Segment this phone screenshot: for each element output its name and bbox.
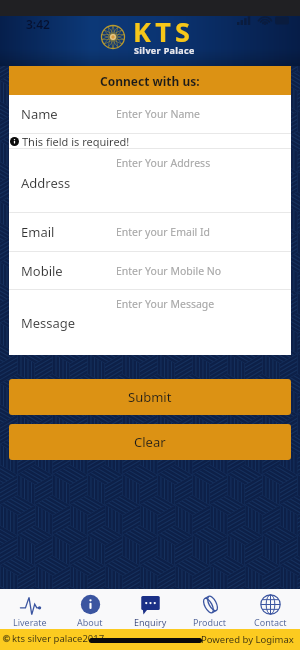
staticText: 3:42 xyxy=(26,16,50,32)
staticText: Message xyxy=(21,314,76,332)
staticText: This field is required! xyxy=(22,134,130,148)
staticText: Mobile xyxy=(21,262,63,280)
staticText: Email xyxy=(21,223,55,241)
staticText: Name xyxy=(21,105,58,123)
button[interactable]: Address xyxy=(9,149,291,212)
button[interactable]: Submit xyxy=(9,379,291,415)
staticText: kts silver palace2017 xyxy=(12,632,105,645)
staticText: Product xyxy=(193,616,227,628)
staticText: Liverate xyxy=(13,616,47,628)
staticText: Contact xyxy=(254,616,287,628)
staticText: Clear xyxy=(134,433,166,451)
staticText: KTS xyxy=(133,13,194,50)
button[interactable]: Clear xyxy=(9,424,291,460)
staticText: Connect with us: xyxy=(100,73,200,89)
button[interactable]: Connect with us: xyxy=(9,66,291,95)
button[interactable]: Contact xyxy=(240,589,300,629)
button[interactable]: Liverate xyxy=(0,589,60,629)
staticText: Enquiry xyxy=(134,616,167,628)
staticText: Enter Your Mobile No xyxy=(116,264,222,278)
staticText: Submit xyxy=(128,388,172,406)
staticText: Powered by Logimax xyxy=(201,633,294,646)
button[interactable]: Enquiry xyxy=(120,589,180,629)
staticText: Enter Your Address xyxy=(116,156,211,170)
button[interactable]: Name xyxy=(9,95,291,133)
staticText: Address xyxy=(21,174,71,192)
staticText: Enter your Email Id xyxy=(116,225,211,239)
button[interactable]: Product xyxy=(180,589,240,629)
staticText: Silver Palace xyxy=(134,44,195,56)
staticText: Enter Your Name xyxy=(116,107,201,121)
button[interactable]: Message xyxy=(9,290,291,355)
staticText: About xyxy=(77,616,103,628)
button[interactable]: About xyxy=(60,589,120,629)
button[interactable]: Email xyxy=(9,213,291,251)
button[interactable]: Mobile xyxy=(9,252,291,289)
staticText: Enter Your Message xyxy=(116,297,215,311)
